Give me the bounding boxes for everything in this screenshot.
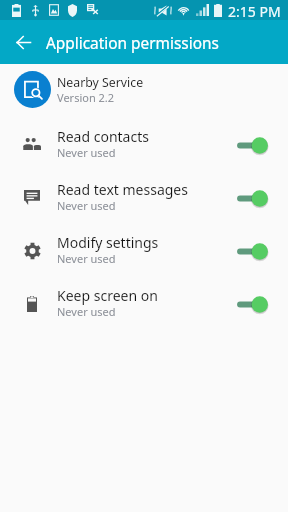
staticText: Never used <box>57 145 116 160</box>
staticText: Never used <box>57 304 116 319</box>
button[interactable]: Keep screen on <box>0 276 288 329</box>
button[interactable]: Toggle Modify settings <box>231 231 281 268</box>
staticText: Nearby Service <box>57 74 144 91</box>
staticText: Keep screen on <box>57 286 158 305</box>
staticText: Modify settings <box>57 233 159 252</box>
button[interactable]: Toggle Read contacts <box>231 125 281 162</box>
staticText: Read text messages <box>57 180 188 199</box>
staticText: Application permissions <box>46 33 219 54</box>
staticText: Version 2.2 <box>57 90 115 105</box>
staticText: Never used <box>57 198 116 213</box>
button[interactable]: Toggle Read text messages <box>231 178 281 215</box>
staticText: 2:15 PM <box>228 2 281 21</box>
staticText: Read contacts <box>57 127 149 146</box>
button[interactable]: Back <box>7 26 39 58</box>
button[interactable]: Toggle Keep screen on <box>231 284 281 321</box>
button[interactable]: Modify settings <box>0 223 288 276</box>
button[interactable]: Read text messages <box>0 170 288 223</box>
button[interactable]: Read contacts <box>0 117 288 170</box>
button[interactable]: Nearby Service <box>0 64 288 117</box>
staticText: Never used <box>57 251 116 266</box>
